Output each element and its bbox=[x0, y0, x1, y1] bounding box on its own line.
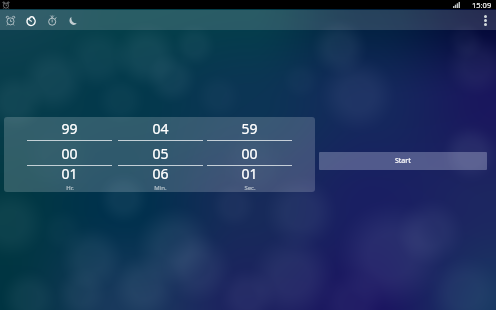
staticText: 15:09 bbox=[472, 0, 492, 9]
button[interactable]: Timer bbox=[21, 10, 42, 30]
button[interactable]: 06 bbox=[118, 166, 203, 192]
staticText: Start bbox=[395, 156, 411, 166]
button[interactable]: 05 bbox=[118, 141, 203, 165]
button[interactable]: 01 bbox=[207, 166, 292, 192]
button[interactable]: Stopwatch bbox=[42, 10, 63, 30]
button[interactable]: Start bbox=[319, 152, 487, 170]
staticText: 59 bbox=[241, 119, 258, 138]
staticText: 01 bbox=[61, 164, 78, 183]
staticText: Min. bbox=[154, 184, 167, 190]
button[interactable]: 04 bbox=[118, 117, 203, 140]
button[interactable]: 00 bbox=[207, 141, 292, 165]
staticText: 00 bbox=[241, 144, 258, 163]
button[interactable]: Bedtime bbox=[63, 10, 84, 30]
button[interactable]: More options bbox=[474, 10, 496, 30]
button[interactable]: 01 bbox=[27, 166, 112, 192]
staticText: 05 bbox=[152, 144, 169, 163]
staticText: 01 bbox=[241, 164, 258, 183]
staticText: Sec. bbox=[244, 184, 256, 190]
staticText: 04 bbox=[152, 119, 169, 138]
staticText: 06 bbox=[152, 164, 169, 183]
button[interactable]: 99 bbox=[27, 117, 112, 140]
button[interactable]: 00 bbox=[27, 141, 112, 165]
staticText: 00 bbox=[61, 144, 78, 163]
button[interactable]: Alarm bbox=[0, 10, 21, 30]
button[interactable]: 59 bbox=[207, 117, 292, 140]
staticText: 99 bbox=[61, 119, 78, 138]
staticText: Hr. bbox=[66, 184, 74, 190]
